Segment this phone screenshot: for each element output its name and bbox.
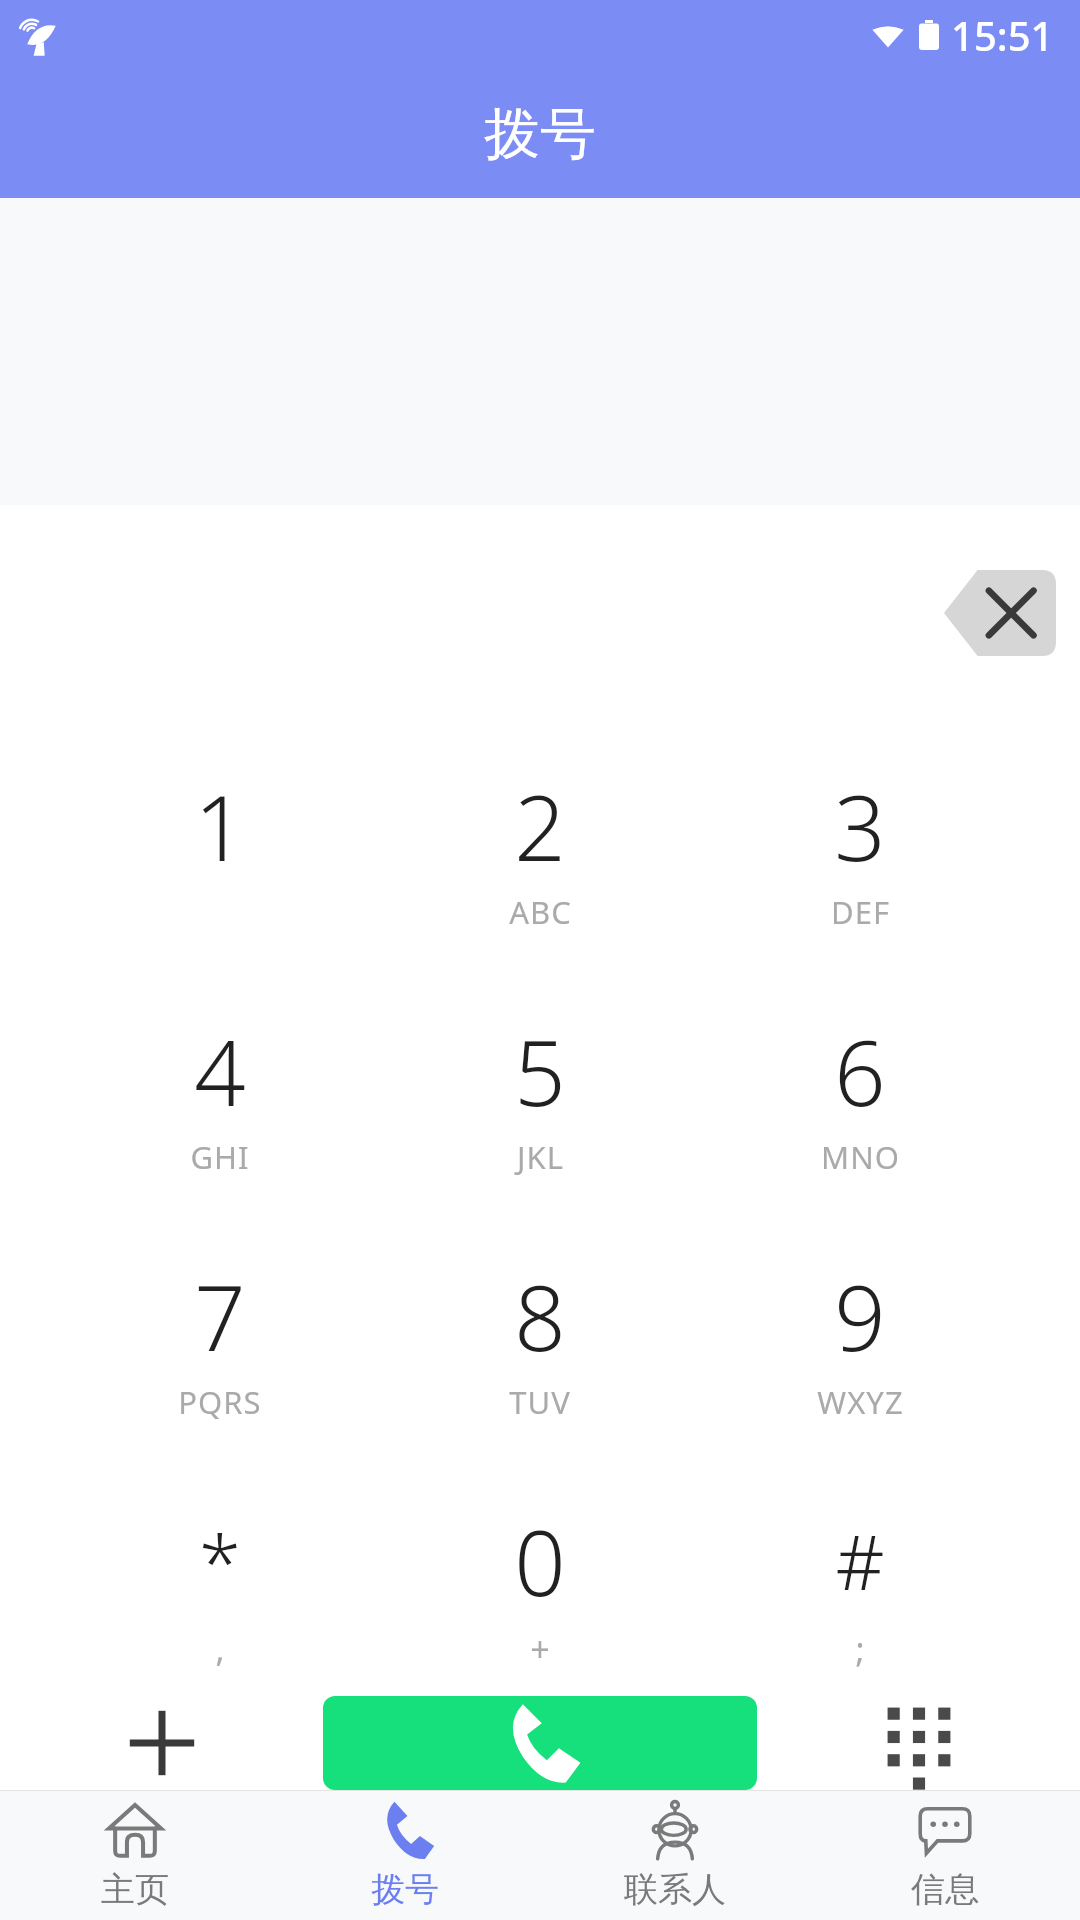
staticText: 5 [514,1010,566,1133]
button[interactable]: Add contact [0,1696,323,1790]
staticText: + [530,1626,551,1672]
staticText: * [199,1509,241,1613]
button[interactable]: Delete [944,570,1056,656]
staticText: PQRS [178,1381,262,1423]
button[interactable]: Call [323,1696,757,1790]
staticText: TUV [509,1381,571,1423]
button[interactable]: 5 [380,1006,700,1206]
button[interactable]: 3 [700,761,1020,961]
staticText: 联系人 [624,1868,726,1911]
button[interactable]: 联系人 [540,1790,810,1920]
staticText: 拨号 [371,1868,439,1911]
staticText: DEF [831,891,890,933]
button[interactable]: 0 [380,1496,700,1696]
staticText: 8 [514,1255,566,1378]
button[interactable]: 信息 [810,1790,1080,1920]
staticText: 2 [514,765,566,888]
staticText: 4 [194,1010,246,1133]
staticText: 信息 [911,1868,979,1911]
staticText: 0 [514,1500,566,1623]
button[interactable]: 2 [380,761,700,961]
staticText: 3 [834,765,886,888]
staticText: , [215,1626,226,1672]
button[interactable]: 主页 [0,1790,270,1920]
staticText: ABC [509,891,572,933]
button[interactable]: * [60,1496,380,1696]
staticText: GHI [190,1136,250,1178]
staticText: MNO [821,1136,900,1178]
staticText: 1 [194,765,246,888]
button[interactable]: 拨号 [270,1790,540,1920]
button[interactable]: 6 [700,1006,1020,1206]
staticText: # [835,1509,885,1613]
staticText: 9 [834,1255,886,1378]
button[interactable]: # [700,1496,1020,1696]
staticText: WXYZ [817,1381,904,1423]
staticText: 7 [194,1255,246,1378]
button[interactable]: 4 [60,1006,380,1206]
staticText: 主页 [101,1868,169,1911]
button[interactable]: 1 [60,761,380,961]
button[interactable]: 7 [60,1251,380,1451]
button[interactable]: 8 [380,1251,700,1451]
staticText: 拨号 [484,99,596,170]
button[interactable]: Keypad [757,1696,1080,1790]
button[interactable]: 9 [700,1251,1020,1451]
staticText: ; [855,1626,866,1672]
staticText: JKL [517,1136,564,1178]
staticText: 6 [834,1010,886,1133]
staticText: 15:51 [951,8,1054,62]
